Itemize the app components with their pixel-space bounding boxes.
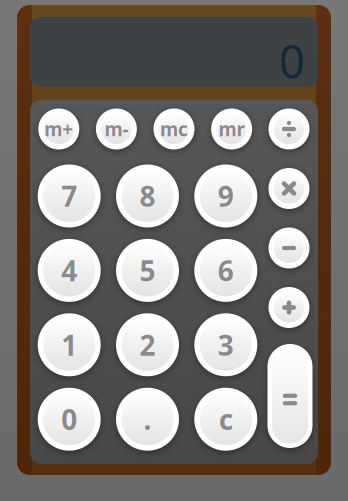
staticText: 0: [61, 401, 77, 438]
staticText: 0: [279, 31, 305, 91]
staticText: 8: [139, 177, 155, 215]
button[interactable]: mc: [153, 108, 194, 149]
staticText: 6: [218, 252, 234, 289]
staticText: .: [143, 401, 151, 438]
staticText: m+: [44, 117, 73, 141]
button[interactable]: 7: [38, 164, 101, 227]
button[interactable]: m+: [38, 108, 79, 149]
button[interactable]: [268, 287, 309, 328]
button[interactable]: [268, 227, 309, 268]
button[interactable]: [268, 108, 309, 149]
button[interactable]: 1: [38, 313, 101, 376]
staticText: 1: [61, 326, 77, 363]
staticText: 9: [218, 177, 234, 215]
button[interactable]: 2: [116, 313, 179, 376]
staticText: mr: [219, 117, 245, 141]
button[interactable]: 0: [38, 388, 101, 451]
button[interactable]: [267, 344, 312, 448]
button[interactable]: m-: [96, 108, 137, 149]
button[interactable]: 8: [116, 164, 179, 227]
button[interactable]: 6: [194, 239, 257, 302]
button[interactable]: 4: [38, 239, 101, 302]
button[interactable]: 3: [194, 313, 257, 376]
button[interactable]: 5: [116, 239, 179, 302]
button[interactable]: 9: [194, 164, 257, 227]
button[interactable]: .: [116, 388, 179, 451]
staticText: c: [219, 401, 233, 438]
staticText: m-: [104, 117, 128, 141]
button[interactable]: [268, 168, 309, 209]
staticText: mc: [160, 117, 188, 141]
staticText: 3: [218, 326, 234, 363]
staticText: 5: [139, 252, 155, 289]
staticText: 7: [61, 177, 77, 215]
staticText: 2: [139, 326, 155, 363]
staticText: 4: [61, 252, 77, 289]
button[interactable]: c: [194, 388, 257, 451]
button[interactable]: mr: [211, 108, 252, 149]
